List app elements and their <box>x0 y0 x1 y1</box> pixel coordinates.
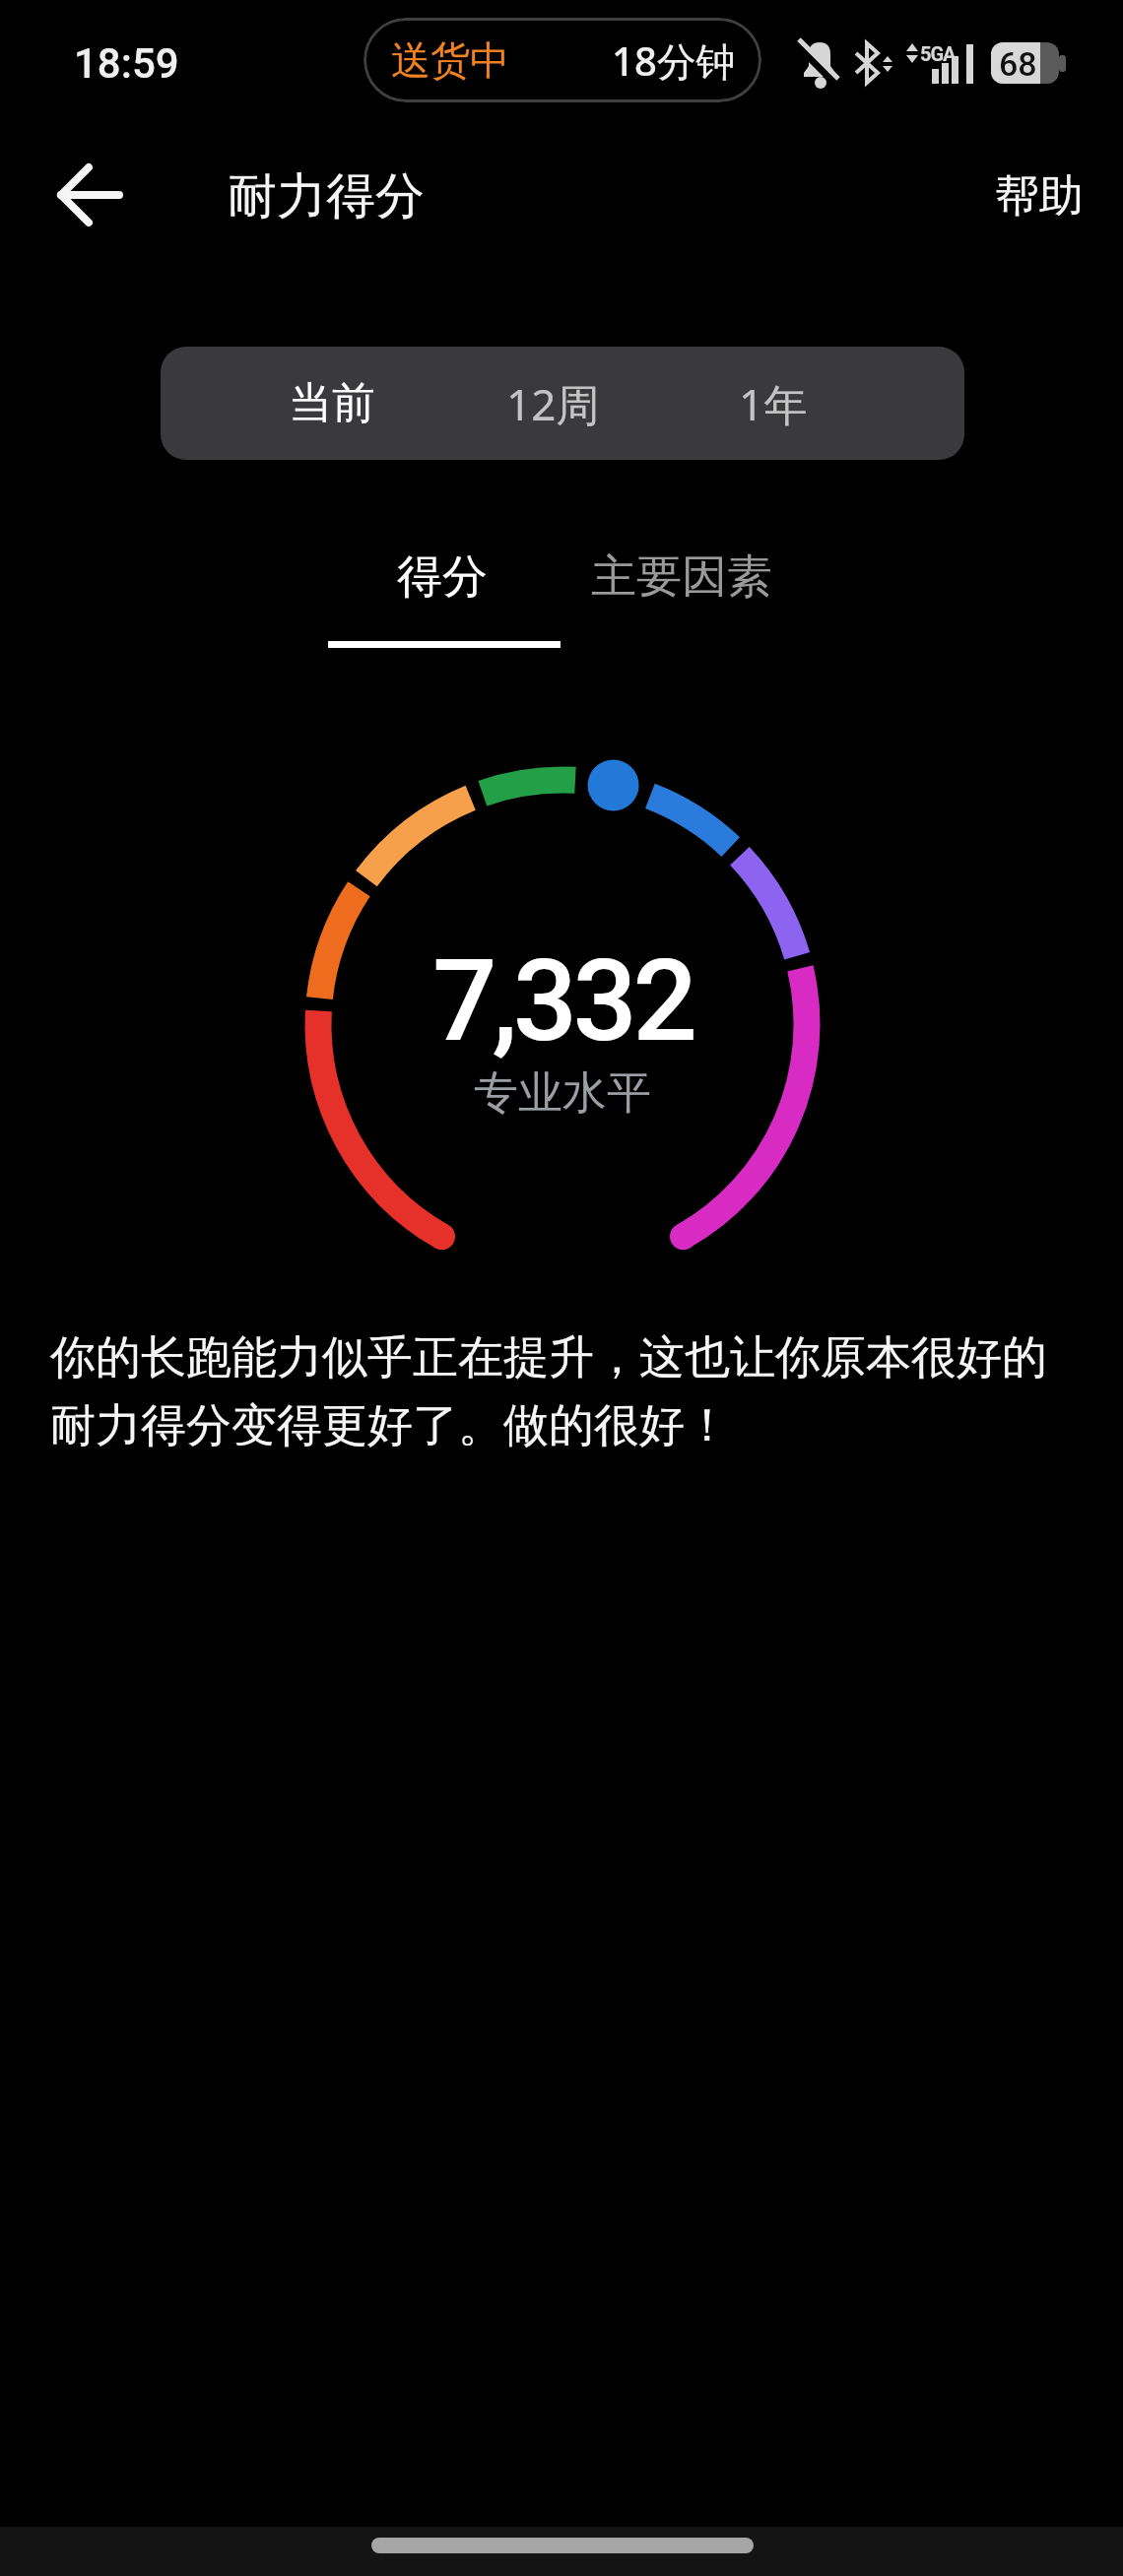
staticText: 7,332 <box>432 934 694 1067</box>
button[interactable]: 当前 <box>161 347 429 460</box>
button[interactable]: 12周 <box>429 347 696 460</box>
staticText: 得分 <box>397 548 488 606</box>
staticText: 当前 <box>289 376 375 430</box>
button[interactable]: 1年 <box>696 347 964 460</box>
button[interactable] <box>44 150 135 240</box>
staticText: 18分钟 <box>612 33 736 88</box>
staticText: 专业水平 <box>474 1065 651 1121</box>
staticText: 68 <box>999 44 1037 84</box>
button[interactable]: 帮助 <box>980 165 1098 226</box>
staticText: 送货中 <box>391 35 509 85</box>
staticText: 主要因素 <box>591 548 772 606</box>
staticText: 1年 <box>739 374 808 433</box>
staticText: 18:59 <box>74 39 179 88</box>
staticText: 5GA <box>920 42 956 65</box>
staticText: 12周 <box>506 374 600 433</box>
staticText: 帮助 <box>995 168 1084 225</box>
staticText: 你的长跑能力似乎正在提升，这也让你原本很好的 耐力得分变得更好了。做的很好！ <box>50 1329 1047 1453</box>
button[interactable]: 得分 <box>334 547 551 607</box>
button[interactable]: 主要因素 <box>573 547 790 607</box>
button[interactable]: 送货中 <box>363 18 761 102</box>
staticText: 耐力得分 <box>228 165 425 226</box>
